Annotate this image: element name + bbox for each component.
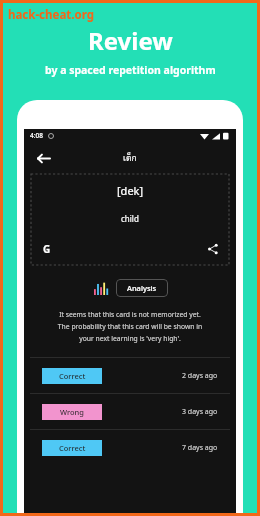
- staticText: 2 days ago: [182, 371, 218, 381]
- staticText: It seems that this card is not memorized…: [36, 310, 224, 319]
- button[interactable]: Correct: [24, 430, 236, 465]
- staticText: by a spaced repetition algorithm: [45, 63, 216, 77]
- button[interactable]: Wrong: [24, 394, 236, 429]
- staticText: your next learning is 'very high'.: [36, 334, 224, 343]
- staticText: Review: [88, 24, 173, 57]
- button[interactable]: Share: [205, 241, 221, 257]
- staticText: Wrong: [60, 407, 84, 417]
- staticText: 4:08: [30, 131, 43, 140]
- staticText: [dek]: [117, 183, 144, 198]
- staticText: Correct: [59, 443, 86, 453]
- staticText: Correct: [59, 371, 86, 381]
- staticText: The probability that this card will be s…: [36, 322, 224, 331]
- staticText: child: [121, 213, 139, 224]
- staticText: Analysis: [127, 283, 157, 293]
- button[interactable]: Back: [32, 147, 54, 169]
- button[interactable]: [dek]: [31, 174, 229, 265]
- button[interactable]: Correct: [24, 358, 236, 393]
- staticText: hack-cheat.org: [8, 7, 94, 23]
- staticText: 7 days ago: [182, 443, 218, 453]
- button[interactable]: Analysis: [116, 279, 168, 297]
- staticText: เด็ก: [123, 151, 137, 165]
- staticText: G: [43, 242, 51, 256]
- button[interactable]: Search on Google: [39, 241, 55, 257]
- staticText: 3 days ago: [182, 407, 218, 417]
